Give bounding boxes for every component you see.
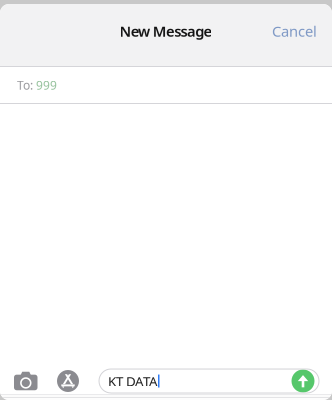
staticText: Cancel xyxy=(272,21,317,41)
staticText: KT DATA xyxy=(108,372,158,390)
staticText: 999 xyxy=(33,77,57,93)
button[interactable]: Send xyxy=(291,369,314,392)
button[interactable]: App Store xyxy=(47,364,99,398)
button[interactable]: Camera xyxy=(0,366,47,396)
button[interactable]: To: xyxy=(0,67,332,103)
staticText: New Message xyxy=(119,21,212,41)
staticText: To: xyxy=(17,77,33,93)
button[interactable]: Cancel xyxy=(272,12,332,50)
